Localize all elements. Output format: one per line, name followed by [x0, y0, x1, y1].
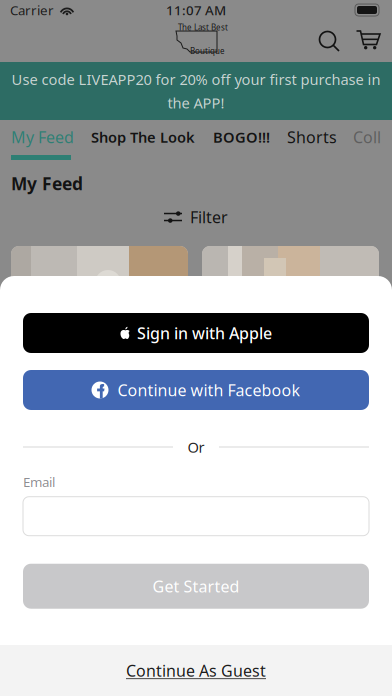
staticText: Shorts [287, 126, 337, 148]
staticText: Or [187, 437, 204, 457]
staticText: Filter [190, 206, 228, 228]
button[interactable]: Get Started [23, 564, 369, 609]
staticText: Coll [353, 126, 381, 148]
staticText: Email [23, 473, 55, 491]
staticText: My Feed [11, 172, 83, 195]
staticText: The Last Best [178, 22, 228, 33]
staticText: Get Started [152, 576, 239, 597]
staticText: the APP! [167, 93, 224, 112]
button[interactable]: Shopping cart [351, 20, 387, 62]
button[interactable]: Continue with Facebook [23, 370, 369, 410]
staticText: Shop The Look [91, 127, 195, 147]
button[interactable]: Sign in with Apple [23, 313, 369, 353]
staticText: Carrier [10, 1, 54, 19]
staticText: 11:07 AM [166, 1, 226, 19]
button[interactable]: Search [311, 20, 347, 62]
staticText: Use code LIVEAPP20 for 20% off your firs… [11, 69, 380, 89]
staticText: BOGO!!! [213, 127, 270, 147]
staticText: Sign in with Apple [137, 322, 272, 344]
staticText: Continue with Facebook [117, 379, 300, 401]
button[interactable]: Continue As Guest [0, 645, 392, 696]
staticText: Boutique [190, 46, 225, 56]
staticText: My Feed [11, 126, 74, 148]
staticText: Continue As Guest [126, 660, 266, 681]
